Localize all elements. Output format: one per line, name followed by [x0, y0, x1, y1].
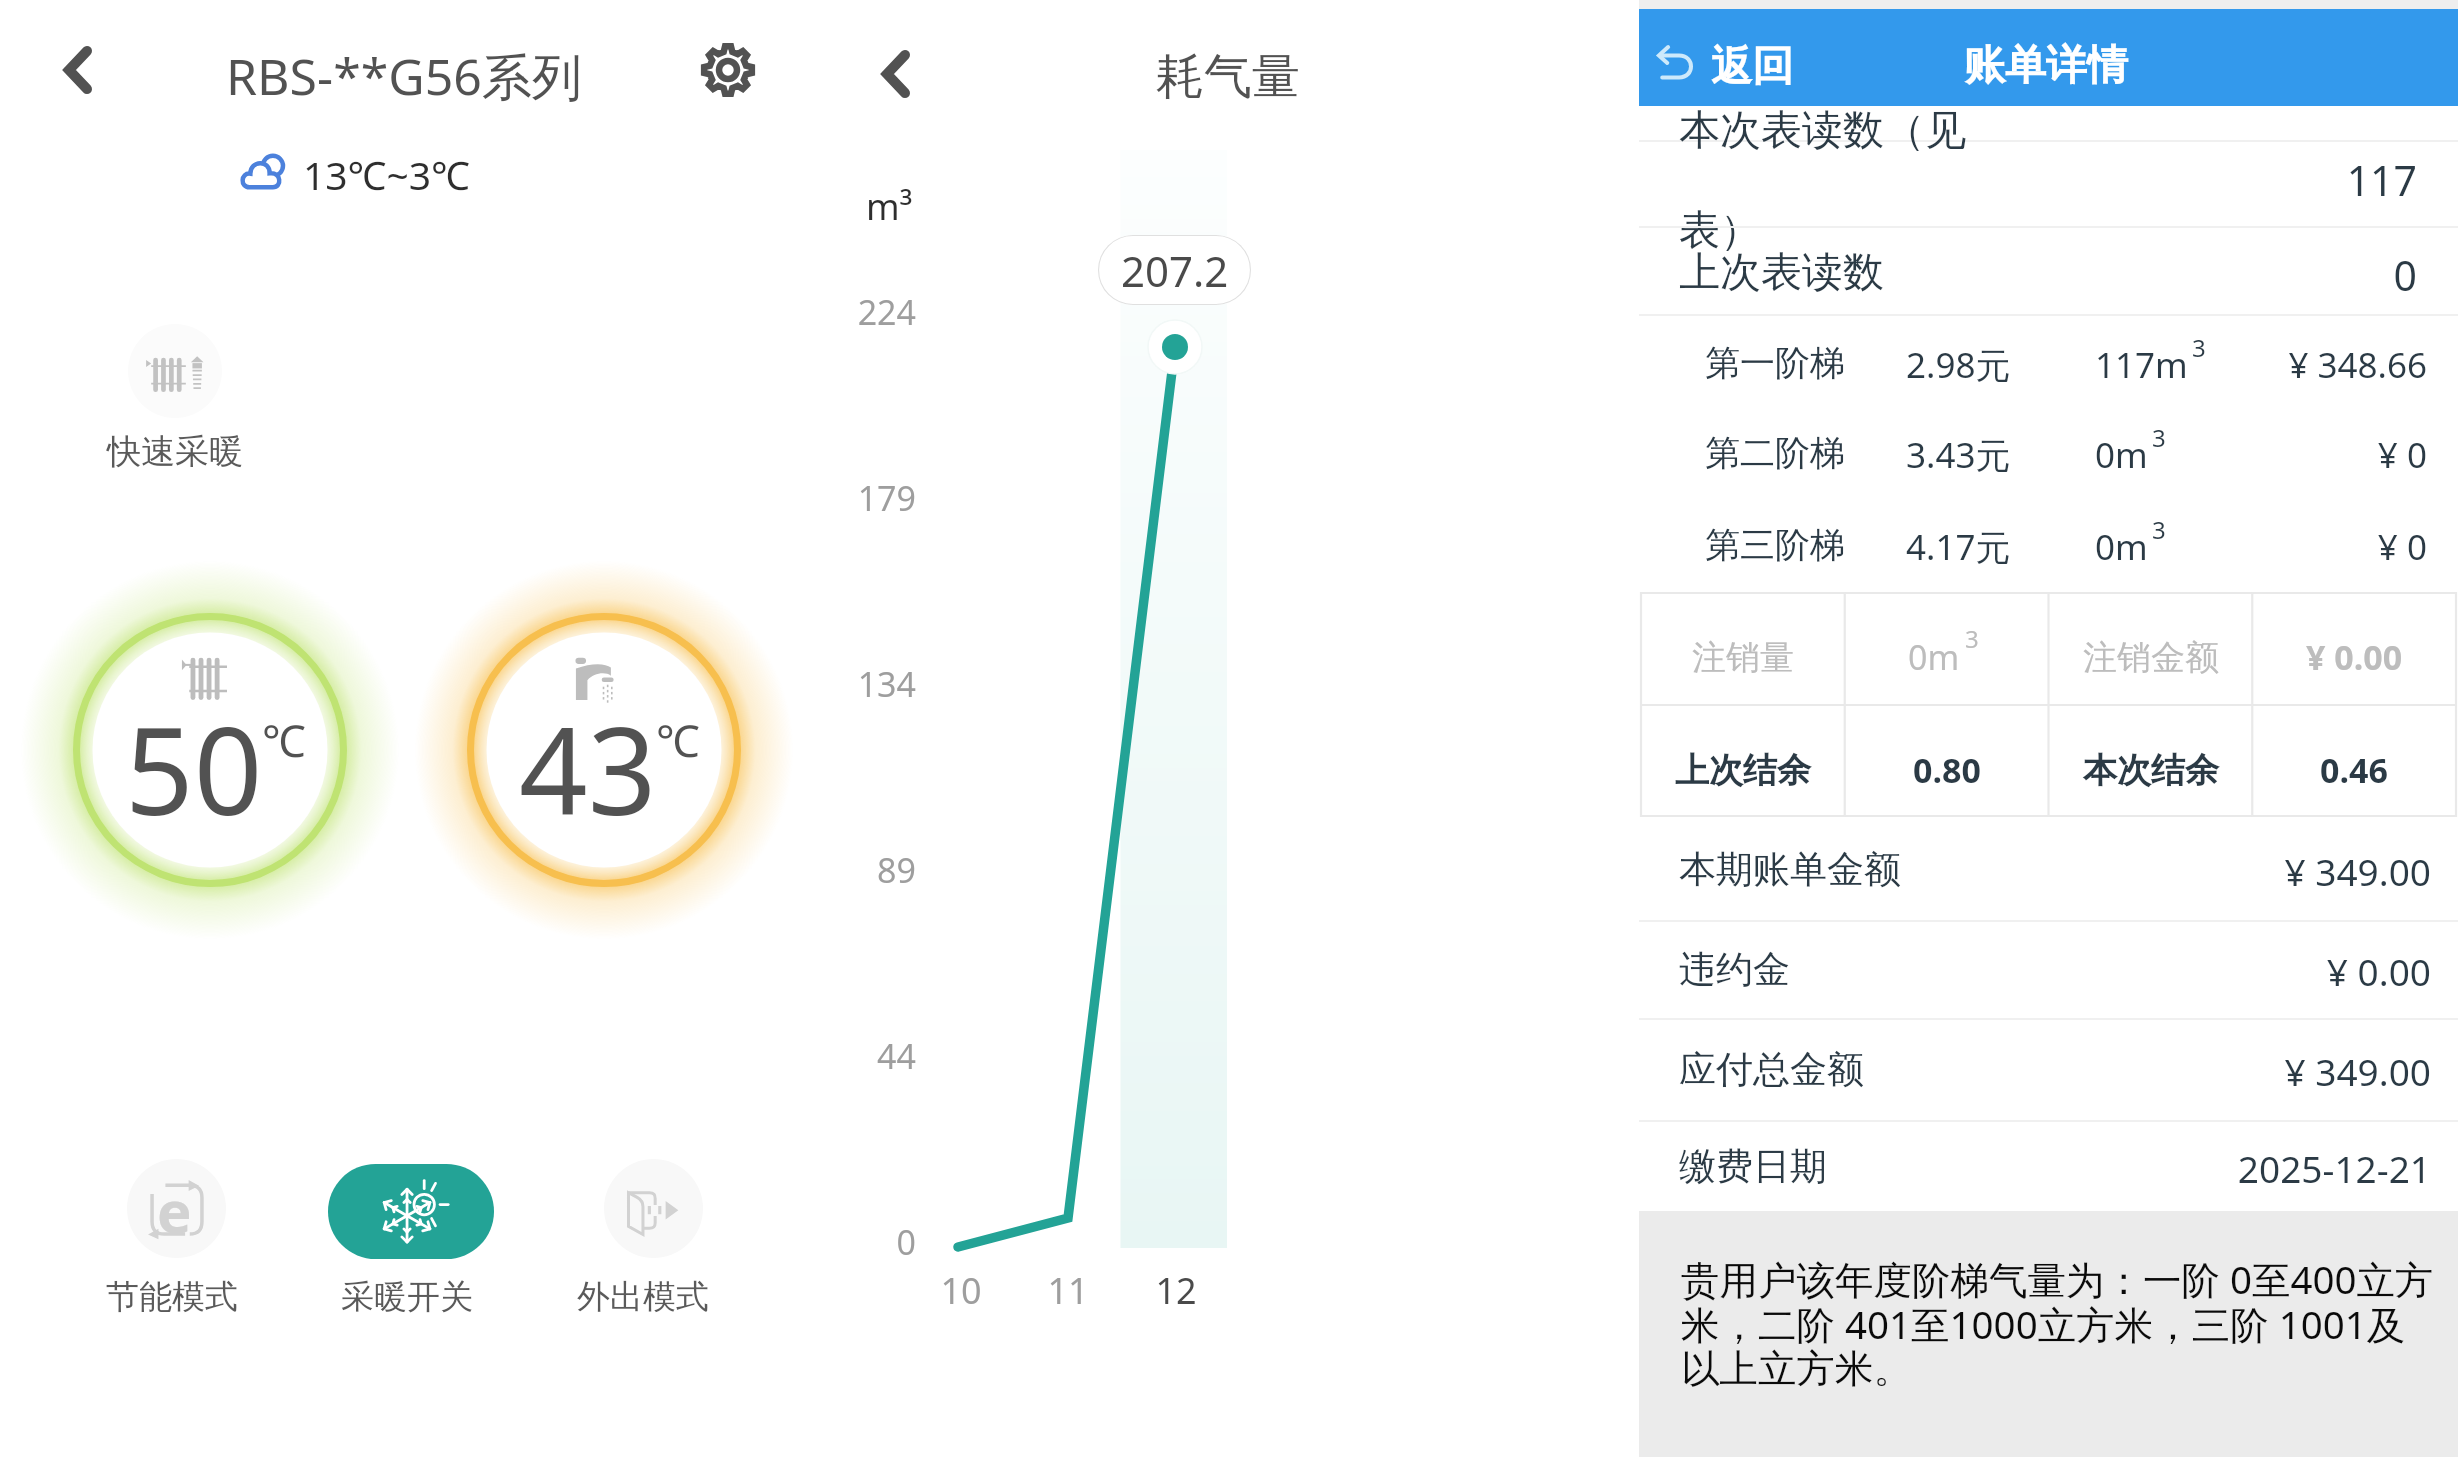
staticText: RBS-**G56系列 — [226, 42, 582, 110]
button[interactable]: 缴费日期 — [1639, 1143, 2458, 1195]
staticText: 3 — [1965, 622, 1979, 655]
button[interactable]: 违约金 — [1639, 946, 2458, 998]
staticText: 0m — [1908, 634, 1960, 680]
staticText: 0 — [1639, 247, 2417, 303]
staticText: 0m — [2095, 431, 2148, 477]
staticText: 表） — [1679, 205, 1761, 257]
staticText: 224 — [831, 289, 916, 335]
staticText: e — [157, 1171, 192, 1250]
staticText: ¥ 0 — [1639, 431, 2427, 477]
staticText: 0.80 — [1913, 747, 1981, 793]
staticText: 返回 — [1711, 41, 1793, 93]
staticText: 采暖开关 — [307, 1276, 507, 1318]
button[interactable]: 采暖开关 — [328, 1164, 494, 1259]
staticText: ℃ — [262, 710, 306, 770]
staticText: ¥ 0 — [1639, 523, 2427, 569]
staticText: 117 — [1639, 152, 2417, 208]
staticText: 3 — [2152, 513, 2166, 546]
staticText: 12 — [1131, 1266, 1221, 1315]
staticText: m³ — [866, 182, 913, 231]
button[interactable]: 第一阶梯 — [1639, 341, 2458, 387]
button[interactable]: 上次表读数 — [1639, 247, 2458, 314]
button[interactable]: 节能模式 — [127, 1159, 226, 1258]
staticText: 注销量 — [1692, 636, 1794, 679]
staticText: 3 — [2152, 421, 2166, 454]
staticText: 快速采暖 — [85, 430, 265, 473]
staticText: 3.43元 — [1906, 431, 2011, 477]
button[interactable]: 外出模式 — [604, 1159, 703, 1258]
staticText: ¥ 349.00 — [1639, 1046, 2431, 1096]
button[interactable]: 本期账单金额 — [1639, 846, 2458, 898]
staticText: 3 — [2192, 331, 2206, 364]
staticText: 50 — [125, 687, 263, 850]
staticText: 上次表读数 — [1679, 247, 1884, 299]
staticText: 节能模式 — [72, 1276, 272, 1318]
staticText: 本次结余 — [2083, 749, 2219, 792]
staticText: 本次表读数（见 — [1679, 105, 1966, 157]
staticText: 44 — [831, 1033, 916, 1079]
button[interactable]: 快速采暖 — [128, 324, 222, 418]
staticText: 注销金额 — [2083, 636, 2219, 679]
staticText: 外出模式 — [543, 1276, 743, 1318]
staticText: 0m — [2095, 523, 2148, 569]
staticText: 0.46 — [2320, 747, 2388, 793]
staticText: ¥ 348.66 — [1639, 341, 2427, 387]
staticText: ℃ — [656, 710, 700, 770]
staticText: 207.2 — [1121, 242, 1229, 299]
staticText: 账单详情 — [1964, 40, 2128, 92]
staticText: 贵用户该年度阶梯气量为：一阶 0至400立方米，二阶 401至1000立方米，三… — [1681, 1253, 2437, 1394]
staticText: 4.17元 — [1906, 523, 2011, 569]
staticText: 0 — [831, 1219, 916, 1265]
button[interactable]: 第二阶梯 — [1639, 431, 2458, 477]
button[interactable]: 应付总金额 — [1639, 1046, 2458, 1098]
staticText: 第二阶梯 — [1705, 431, 1845, 475]
staticText: ¥ 349.00 — [1639, 846, 2431, 896]
staticText: ¥ 0.00 — [2306, 634, 2403, 680]
staticText: 第一阶梯 — [1705, 341, 1845, 385]
button[interactable]: 43 — [414, 560, 794, 940]
staticText: 缴费日期 — [1679, 1143, 1827, 1190]
staticText: 耗气量 — [1156, 47, 1300, 107]
staticText: 违约金 — [1679, 946, 1790, 993]
staticText: 134 — [831, 661, 916, 707]
button[interactable]: Settings — [688, 28, 770, 110]
button[interactable]: 第三阶梯 — [1639, 523, 2458, 569]
staticText: 43 — [519, 687, 657, 850]
staticText: 13℃~3℃ — [303, 148, 470, 201]
staticText: 2025-12-21 — [1639, 1143, 2431, 1193]
button[interactable]: Back — [862, 30, 942, 118]
staticText: 89 — [831, 847, 916, 893]
staticText: ¥ 0.00 — [1639, 946, 2431, 996]
button[interactable]: 50 — [20, 560, 400, 940]
button[interactable]: 13℃~3℃ — [232, 140, 462, 204]
staticText: 11 — [1023, 1266, 1113, 1315]
button[interactable]: 返回 — [1647, 19, 1797, 95]
staticText: 179 — [831, 475, 916, 521]
staticText: 117m — [2095, 341, 2188, 387]
staticText: 2.98元 — [1906, 341, 2011, 387]
staticText: 上次结余 — [1675, 749, 1811, 792]
staticText: 10 — [916, 1266, 1006, 1315]
staticText: 应付总金额 — [1679, 1046, 1864, 1093]
button[interactable]: Back — [44, 26, 124, 114]
staticText: 第三阶梯 — [1705, 523, 1845, 567]
staticText: 本期账单金额 — [1679, 846, 1901, 893]
button[interactable]: 本次表读数（见 — [1639, 106, 2458, 226]
